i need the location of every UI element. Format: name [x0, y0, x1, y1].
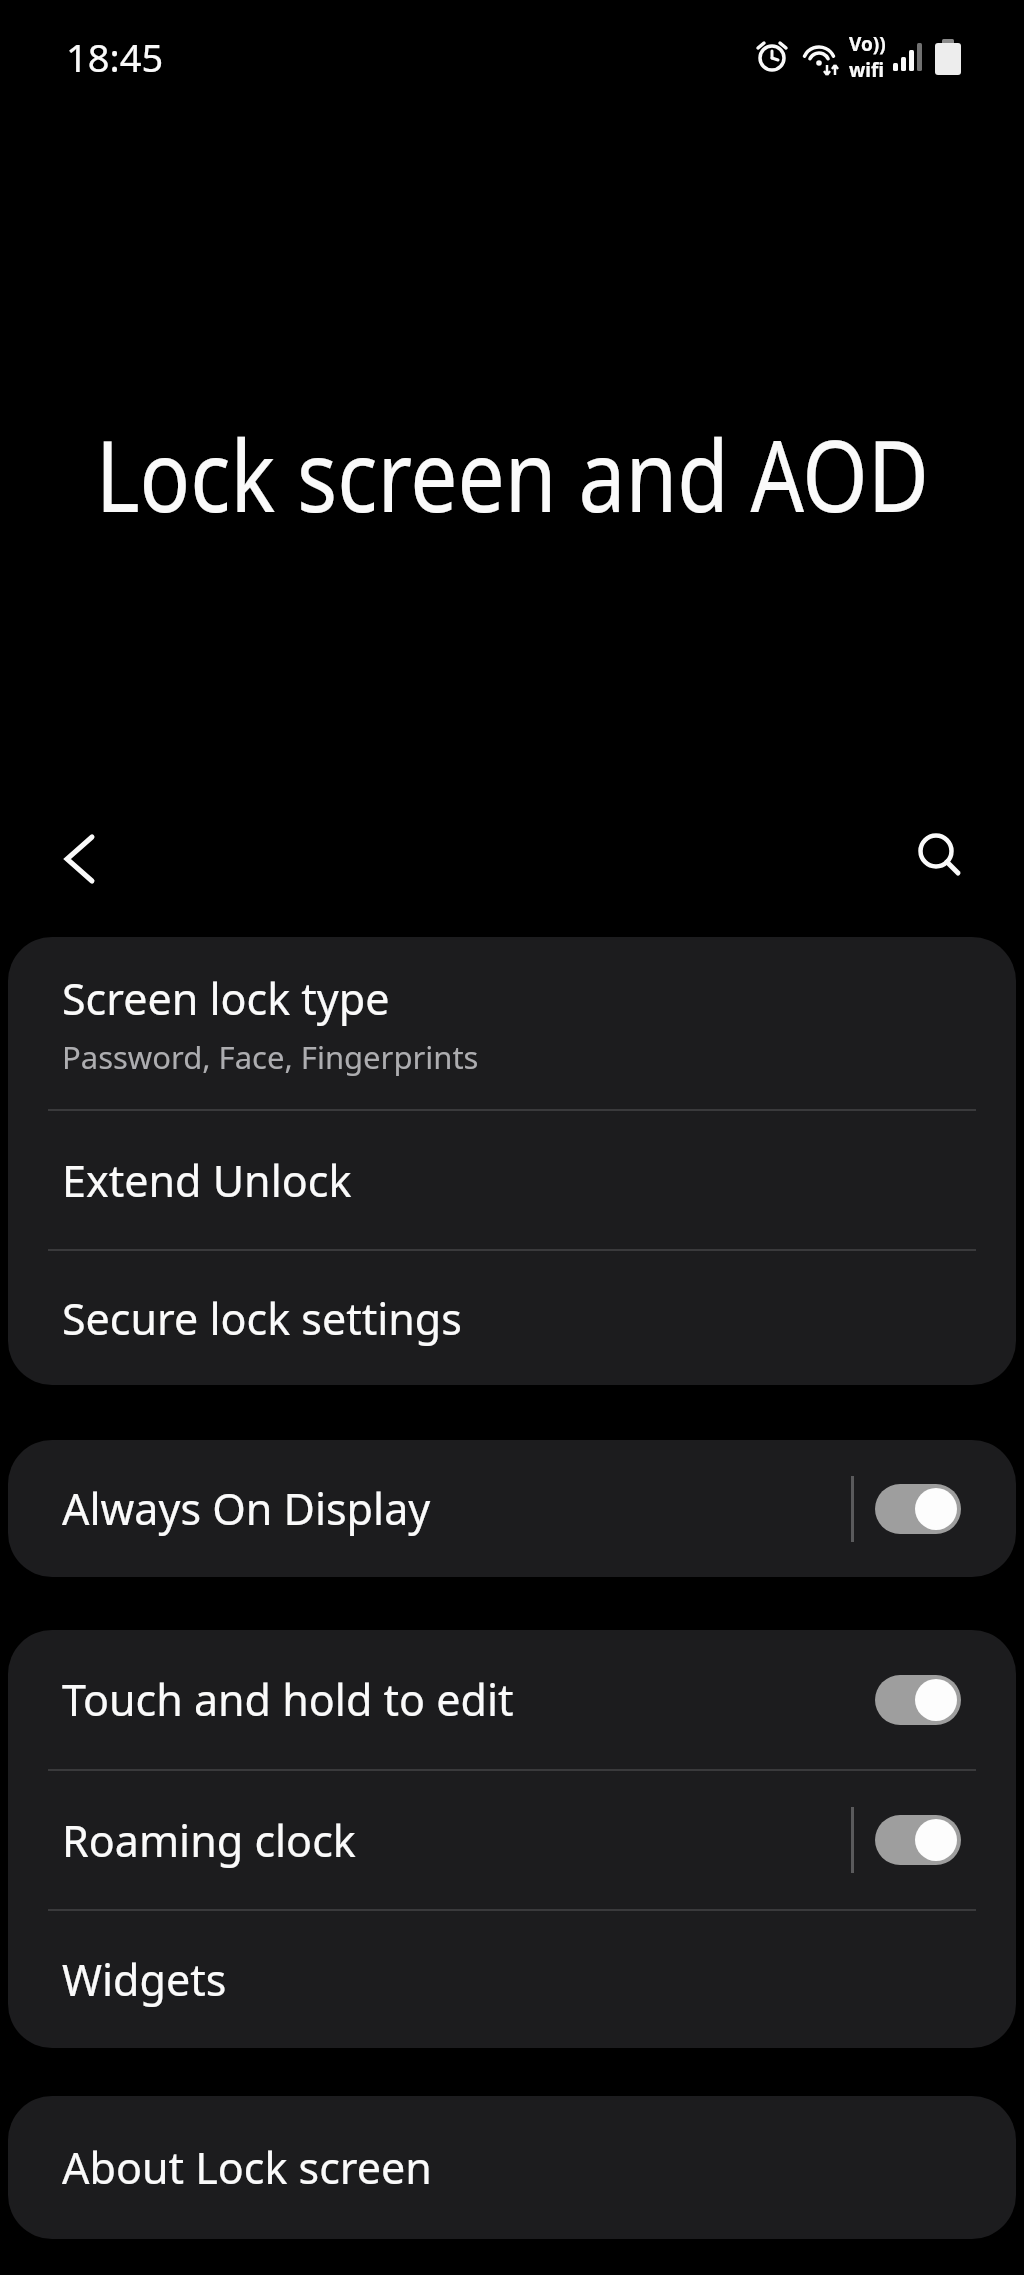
- staticText: Roaming clock: [62, 1811, 356, 1870]
- button[interactable]: Screen lock type: [8, 937, 1016, 1109]
- staticText: Touch and hold to edit: [62, 1670, 514, 1729]
- staticText: 18:45: [66, 31, 164, 83]
- button[interactable]: Secure lock settings: [8, 1251, 1016, 1385]
- staticText: Always On Display: [62, 1479, 431, 1538]
- button[interactable]: Touch and hold to edit: [8, 1630, 1016, 1769]
- button[interactable]: [912, 830, 968, 886]
- staticText: About Lock screen: [62, 2138, 432, 2197]
- button[interactable]: Extend Unlock: [8, 1111, 1016, 1249]
- staticText: Password, Face, Fingerprints: [62, 1036, 479, 1078]
- staticText: wifi: [849, 57, 884, 83]
- staticText: Widgets: [62, 1950, 227, 2009]
- staticText: Lock screen and AOD: [96, 407, 929, 540]
- staticText: Screen lock type: [62, 969, 390, 1028]
- staticText: Secure lock settings: [62, 1289, 462, 1348]
- button[interactable]: [54, 834, 104, 884]
- button[interactable]: Widgets: [8, 1911, 1016, 2048]
- button[interactable]: [875, 1675, 961, 1725]
- button[interactable]: [875, 1484, 961, 1534]
- button[interactable]: About Lock screen: [8, 2096, 1016, 2239]
- button[interactable]: Roaming clock: [8, 1771, 1016, 1909]
- button[interactable]: Always On Display: [8, 1440, 1016, 1577]
- staticText: Vo)): [849, 31, 886, 57]
- staticText: Extend Unlock: [62, 1151, 352, 1210]
- button[interactable]: [875, 1815, 961, 1865]
